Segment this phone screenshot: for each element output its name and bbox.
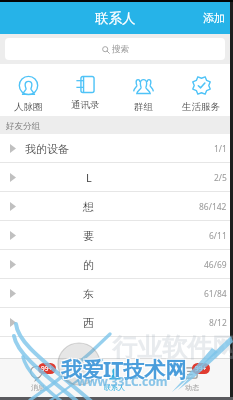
button[interactable]: 人脉圈 [0, 64, 57, 116]
staticText: 添加 [203, 11, 225, 25]
staticText: 通讯录 [71, 99, 100, 111]
staticText: 好友分组 [6, 121, 40, 132]
staticText: 联系人 [104, 383, 125, 392]
staticText: 我爱IT技术网 [60, 354, 186, 383]
staticText: 东 [83, 287, 94, 301]
staticText: 我的设备 [25, 142, 69, 156]
staticText: 人脉圈 [14, 101, 43, 113]
staticText: 2/5 [214, 172, 227, 184]
button[interactable]: 生活服务 [172, 64, 230, 116]
staticText: 我爱IT技术网 [62, 356, 188, 385]
button[interactable]: 我的设备 [0, 134, 230, 163]
button[interactable]: L [0, 163, 230, 192]
button[interactable]: 群组 [114, 64, 172, 116]
button[interactable]: 的 [0, 250, 230, 279]
staticText: 动态 [185, 383, 199, 392]
button[interactable]: 搜索 [5, 38, 225, 60]
staticText: 联系人 [95, 10, 136, 27]
staticText: 消息 [31, 383, 45, 392]
button[interactable]: 添加 [198, 5, 230, 31]
staticText: 8/12 [209, 317, 227, 329]
button[interactable]: 东 [0, 279, 230, 308]
staticText: 61/84 [204, 288, 227, 300]
staticText: 行业软件网 [112, 332, 233, 363]
staticText: 我爱IT技术网 [62, 354, 188, 383]
staticText: 的 [83, 258, 94, 272]
button[interactable]: 要 [0, 221, 230, 250]
staticText: 搜索 [112, 44, 129, 55]
button[interactable]: 通讯录 [57, 64, 114, 116]
staticText: 6/11 [209, 230, 227, 242]
button[interactable]: 想 [0, 192, 230, 221]
button[interactable]: 西 [0, 308, 230, 337]
staticText: 想 [83, 200, 94, 214]
staticText: 要 [83, 229, 94, 243]
staticText: 86/142 [199, 201, 227, 213]
staticText: 46/69 [204, 259, 227, 271]
staticText: 群组 [134, 101, 153, 113]
staticText: 1/1 [214, 143, 227, 155]
button[interactable]: 99+ [0, 359, 76, 397]
staticText: 西 [83, 316, 94, 330]
staticText: www.33LC.com [77, 373, 168, 389]
staticText: L [86, 170, 92, 185]
staticText: 99+ [195, 364, 207, 373]
staticText: 99+ [41, 364, 53, 373]
staticText: 我爱IT技术网 [61, 355, 187, 384]
button[interactable]: 99+ [153, 359, 230, 397]
staticText: 生活服务 [182, 101, 220, 113]
button[interactable]: 联系人 [76, 359, 153, 397]
staticText: 我爱IT技术网 [60, 356, 186, 385]
